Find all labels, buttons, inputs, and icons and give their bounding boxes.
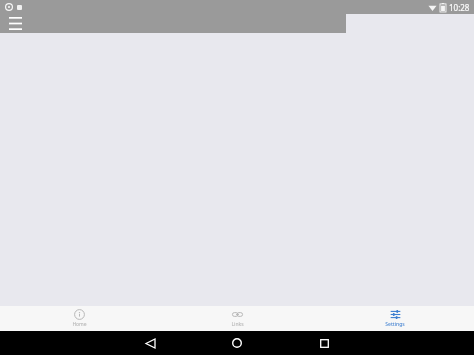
button[interactable]: Home: [227, 333, 247, 353]
button[interactable]: Settings: [316, 306, 474, 331]
button[interactable]: Recent apps: [314, 333, 334, 353]
button[interactable]: Open navigation menu: [4, 14, 26, 33]
button[interactable]: Back: [140, 333, 160, 353]
staticText: Home: [72, 321, 87, 328]
staticText: 10:28: [449, 2, 470, 13]
staticText: Links: [231, 321, 244, 328]
staticText: Settings: [385, 321, 405, 328]
button[interactable]: Home: [0, 306, 158, 331]
button[interactable]: Links: [158, 306, 316, 331]
